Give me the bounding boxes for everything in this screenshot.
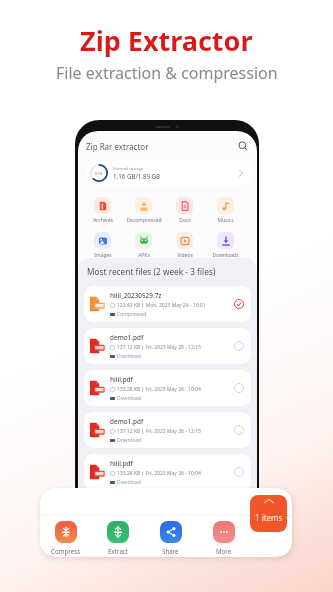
staticText: 133.28 KB | Fri, 2023 May 26 - 10:04: [117, 386, 201, 393]
button[interactable]: 61%: [86, 159, 251, 186]
button[interactable]: Images: [82, 232, 123, 259]
staticText: Most recent files (2 week - 3 files): [87, 266, 216, 277]
button[interactable]: Share: [144, 521, 197, 555]
staticText: Images: [94, 252, 112, 259]
staticText: Downloads: [212, 252, 239, 259]
button[interactable]: Extract: [92, 521, 144, 555]
staticText: Share: [162, 547, 179, 555]
button[interactable]: Docs: [164, 197, 205, 224]
button[interactable]: hiiii_20230529.7z: [84, 286, 251, 322]
staticText: Compressed: [117, 311, 147, 318]
button[interactable]: hiiii.pdf: [84, 370, 251, 406]
button[interactable]: demo1.pdf: [84, 412, 251, 448]
button[interactable]: Videos: [164, 232, 205, 259]
button[interactable]: 1 items: [250, 495, 287, 532]
staticText: 133.28 KB | Fri, 2023 May 26 - 10:04: [117, 470, 201, 477]
staticText: Decompressed: [126, 217, 162, 224]
staticText: File extraction & compression: [56, 62, 278, 84]
staticText: Zip Rar extractor: [86, 141, 149, 152]
staticText: Musics: [217, 217, 234, 224]
staticText: Docs: [179, 217, 191, 224]
staticText: demo1.pdf: [110, 333, 144, 342]
staticText: hiiii.pdf: [110, 459, 133, 468]
staticText: 1 items: [255, 512, 283, 523]
staticText: demo1.pdf: [110, 417, 144, 426]
staticText: Extract: [108, 547, 129, 555]
button[interactable]: APKs: [123, 232, 164, 259]
button[interactable]: Musics: [205, 197, 246, 224]
staticText: hiiii.pdf: [110, 375, 133, 384]
button[interactable]: demo1.pdf: [84, 328, 251, 364]
staticText: APKs: [138, 252, 150, 259]
staticText: More: [216, 547, 232, 555]
button[interactable]: Downloads: [205, 232, 246, 259]
staticText: 137.12 KB | Fri, 2023 May 26 - 12:15: [117, 344, 201, 351]
button[interactable]: Compress: [40, 521, 92, 555]
staticText: 137.12 KB | Fri, 2023 May 26 - 12:15: [117, 428, 201, 435]
staticText: Download: [117, 353, 141, 360]
button[interactable]: Decompressed: [123, 197, 164, 224]
staticText: 1.16 GB/1.89 GB: [113, 172, 161, 180]
staticText: Download: [117, 479, 141, 486]
button[interactable]: Search: [236, 139, 250, 153]
staticText: 123.42 KB | Mon, 2023 May 29 - 10:01: [117, 302, 206, 309]
button[interactable]: More: [197, 521, 250, 555]
staticText: Download: [117, 395, 141, 402]
staticText: hiiii_20230529.7z: [110, 291, 162, 300]
staticText: 61%: [95, 171, 103, 176]
staticText: Download: [117, 437, 141, 444]
button[interactable]: hiiii.pdf: [84, 454, 251, 490]
staticText: Internal storage: [113, 166, 144, 171]
button[interactable]: Archives: [82, 197, 123, 224]
staticText: Compress: [51, 547, 81, 555]
staticText: Archives: [93, 217, 113, 224]
staticText: Zip Extractor: [80, 22, 253, 59]
staticText: Videos: [177, 252, 193, 259]
